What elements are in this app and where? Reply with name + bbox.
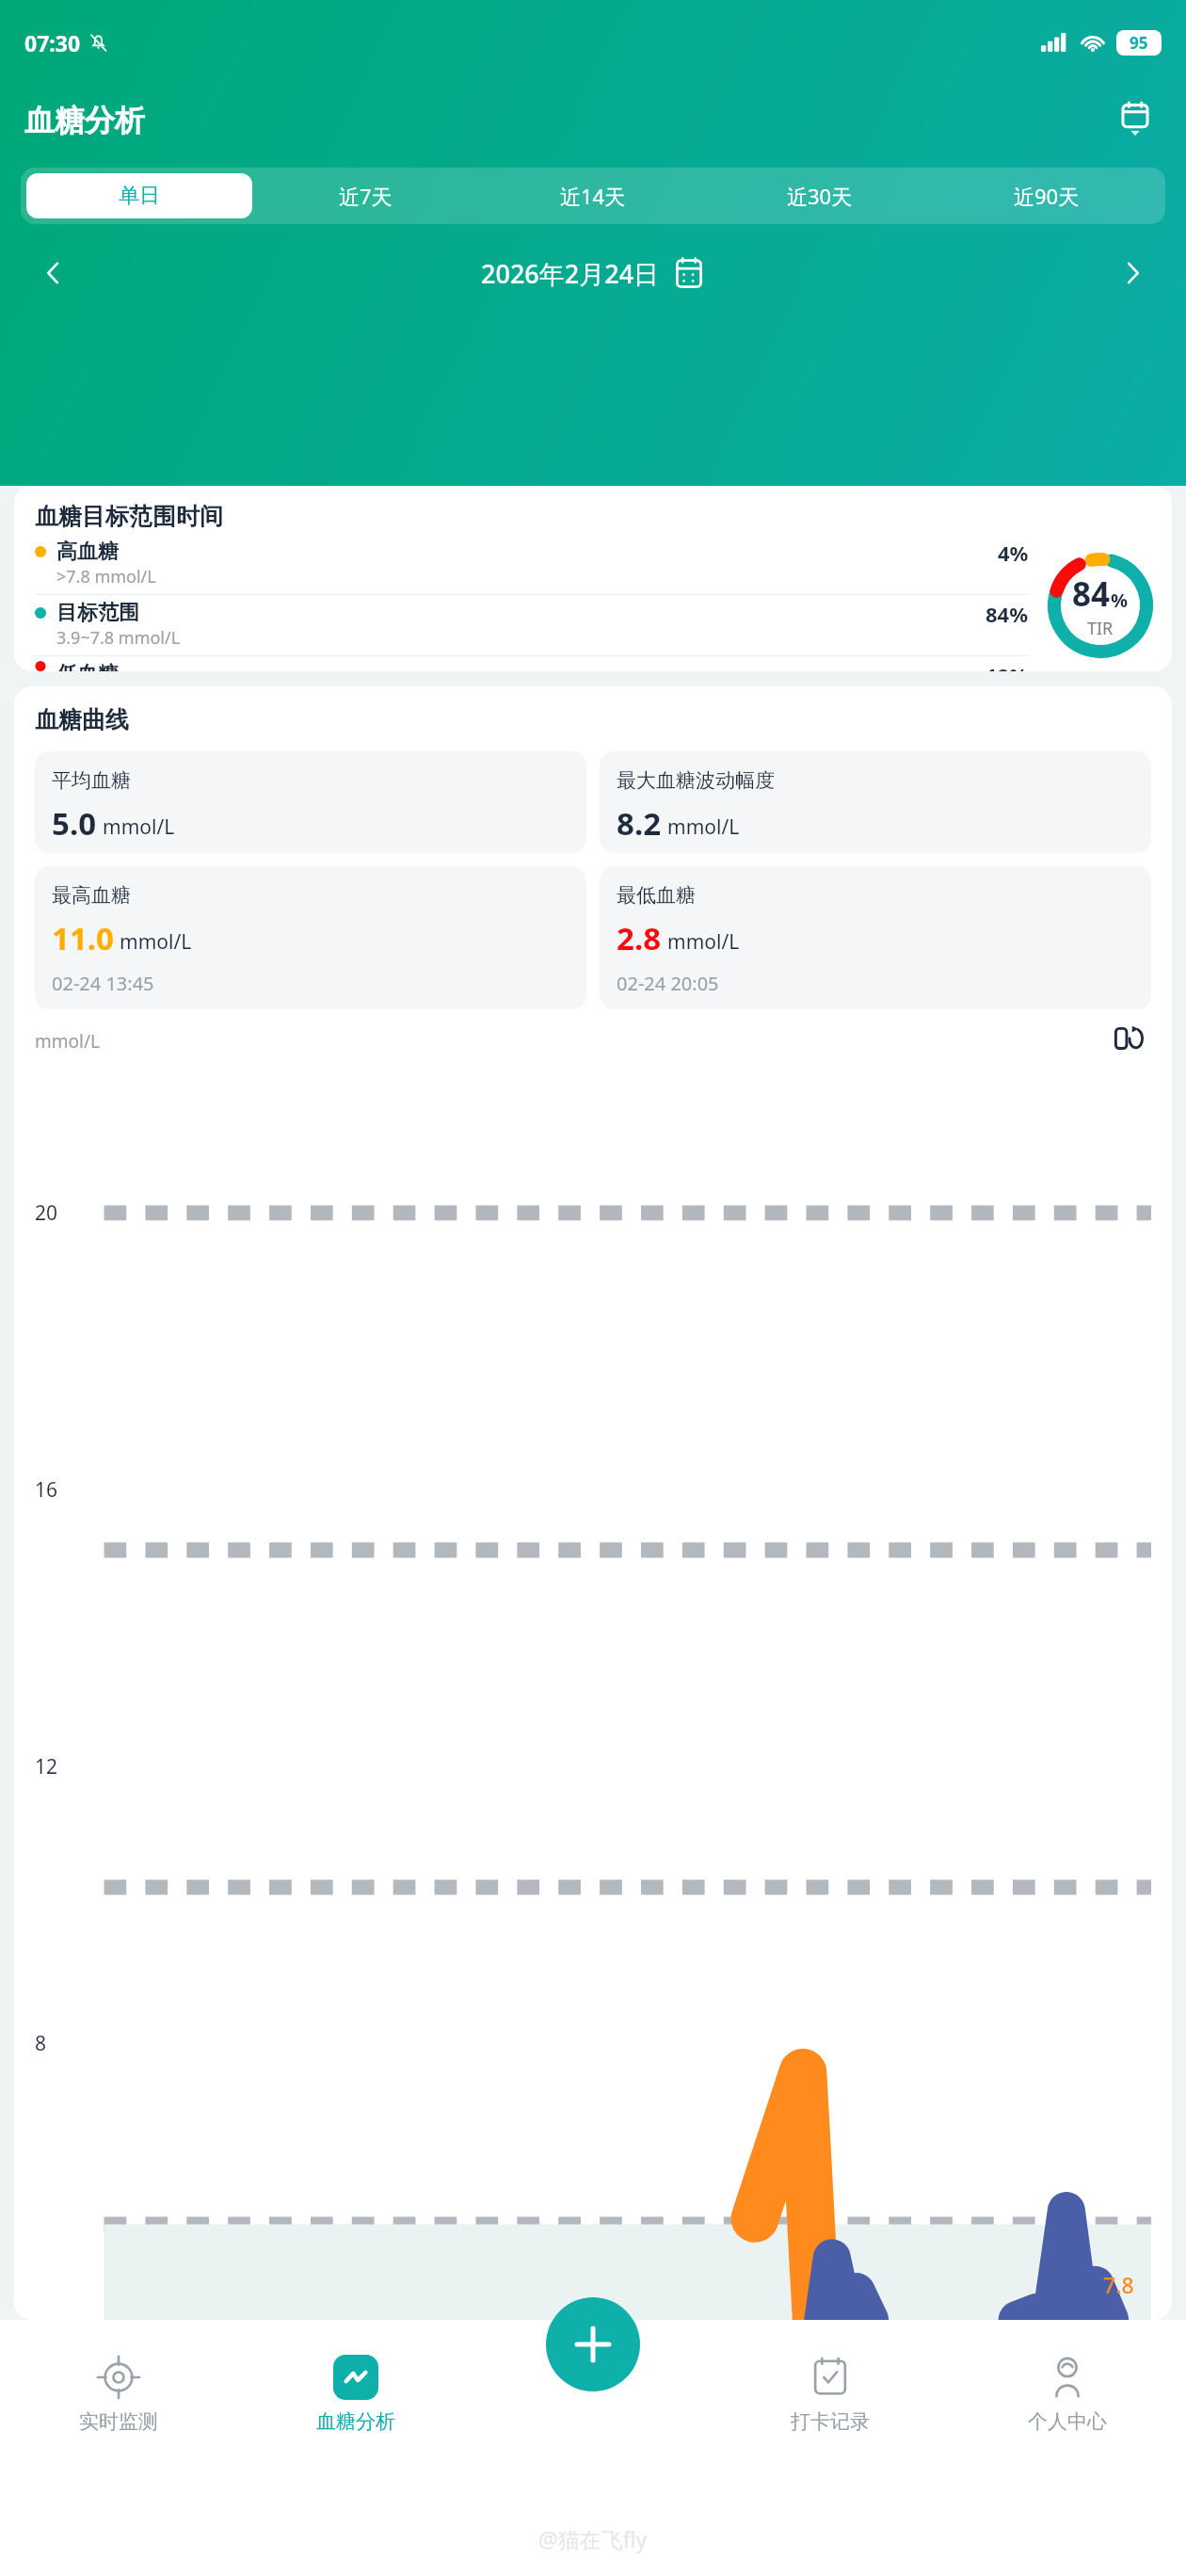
staticText: 近14天	[560, 182, 626, 210]
button[interactable]: Rotate chart	[1108, 1021, 1151, 1062]
staticText: 近30天	[787, 182, 853, 210]
button[interactable]: 最低血糖	[600, 866, 1151, 1009]
button[interactable]: 单日	[26, 173, 252, 218]
staticText: 12	[35, 1753, 58, 1780]
staticText: 最低血糖	[617, 883, 696, 908]
staticText: 07:30	[24, 28, 81, 57]
staticText: >7.8 mmol/L	[56, 565, 156, 588]
button[interactable]: 血糖目标范围时间	[14, 486, 1172, 671]
staticText: 个人中心	[1028, 2409, 1107, 2434]
staticText: 7.8	[1103, 2270, 1134, 2299]
staticText: 血糖分析	[316, 2409, 395, 2434]
staticText: 84	[1072, 572, 1111, 617]
staticText: 实时监测	[79, 2409, 158, 2434]
staticText: 血糖分析	[24, 102, 145, 139]
staticText: TIR	[1087, 617, 1114, 640]
button[interactable]: Previous day	[24, 244, 83, 302]
staticText: 血糖目标范围时间	[35, 502, 223, 531]
staticText: 3.9~7.8 mmol/L	[56, 626, 181, 650]
button[interactable]: Add record	[546, 2297, 640, 2391]
staticText: 20	[35, 1199, 58, 1227]
button[interactable]: 近90天	[933, 173, 1160, 218]
staticText: 16	[35, 1476, 58, 1504]
button[interactable]: 最大血糖波动幅度	[600, 751, 1151, 853]
button[interactable]: Select date	[1109, 94, 1162, 147]
staticText: mmol/L	[35, 1029, 100, 1054]
staticText: 4%	[998, 539, 1029, 565]
staticText: @猫在飞fly	[538, 2524, 648, 2553]
staticText: mmol/L	[667, 928, 740, 956]
button[interactable]: 平均血糖	[35, 751, 586, 853]
staticText: mmol/L	[120, 928, 192, 956]
staticText: 近90天	[1014, 182, 1080, 210]
staticText: 2.8	[617, 917, 662, 959]
staticText: 最大血糖波动幅度	[617, 768, 775, 793]
staticText: 单日	[119, 183, 160, 209]
staticText: 目标范围	[56, 600, 139, 626]
button[interactable]: 最高血糖	[35, 866, 586, 1009]
staticText: 8.2	[617, 802, 662, 845]
staticText: 02-24 20:05	[617, 971, 719, 996]
staticText: 最高血糖	[52, 883, 131, 908]
staticText: 8	[35, 2030, 47, 2057]
staticText: 5.0	[52, 802, 97, 845]
staticText: 84%	[986, 600, 1029, 626]
staticText: 近7天	[339, 182, 393, 210]
button[interactable]: Next day	[1103, 244, 1162, 302]
staticText: 低血糖	[56, 661, 119, 671]
button[interactable]: 近30天	[706, 173, 933, 218]
staticText: 02-24 13:45	[52, 971, 154, 996]
staticText: 血糖曲线	[35, 705, 129, 734]
button[interactable]: 近7天	[252, 173, 479, 218]
staticText: 平均血糖	[52, 768, 131, 793]
staticText: %	[1111, 588, 1129, 613]
staticText: 11.0	[52, 917, 114, 959]
staticText: 95	[1130, 32, 1148, 54]
staticText: 高血糖	[56, 539, 119, 565]
button[interactable]: 实时监测	[0, 2320, 237, 2469]
button[interactable]: 打卡记录	[712, 2320, 949, 2469]
button[interactable]: 个人中心	[949, 2320, 1186, 2469]
staticText: mmol/L	[103, 813, 175, 841]
staticText: 打卡记录	[791, 2409, 870, 2434]
button[interactable]: 血糖分析	[237, 2320, 474, 2469]
button[interactable]: 近14天	[479, 173, 706, 218]
staticText: 12%	[986, 661, 1029, 671]
staticText: 2026年2月24日	[481, 256, 660, 291]
staticText: mmol/L	[667, 813, 740, 841]
